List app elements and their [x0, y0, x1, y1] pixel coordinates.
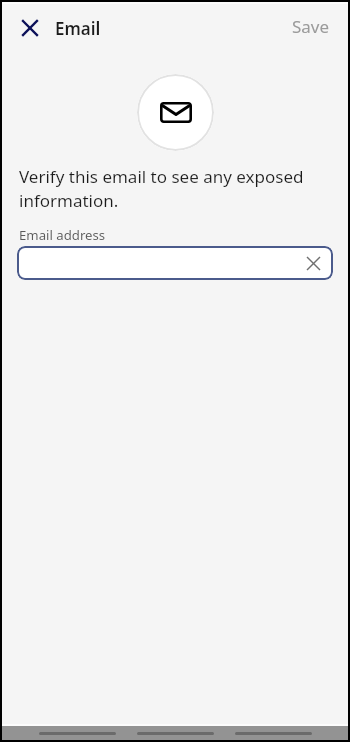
staticText: Email address [19, 226, 106, 244]
button[interactable]: Save [276, 9, 348, 48]
button[interactable]: Clear [17, 246, 333, 280]
button[interactable]: Clear [301, 251, 325, 275]
staticText: Save [292, 15, 330, 38]
button[interactable]: Close [12, 10, 48, 46]
staticText: Verify this email to see any exposed inf… [19, 165, 320, 212]
staticText: Email [55, 17, 101, 40]
